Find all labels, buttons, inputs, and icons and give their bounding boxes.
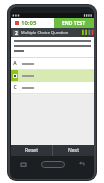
button[interactable]: 10:05 bbox=[11, 18, 54, 28]
staticText: END TEST bbox=[62, 20, 86, 27]
button[interactable]: Back bbox=[69, 157, 94, 171]
staticText: 10:05 bbox=[21, 19, 37, 27]
button[interactable]: Reset bbox=[11, 145, 52, 156]
button[interactable]: C bbox=[11, 82, 94, 93]
staticText: C bbox=[13, 84, 17, 91]
staticText: Next bbox=[68, 147, 79, 154]
button[interactable]: 2 bbox=[11, 28, 94, 37]
button[interactable]: Home bbox=[36, 157, 69, 171]
staticText: Reset bbox=[25, 147, 38, 154]
button[interactable]: A bbox=[11, 58, 94, 69]
staticText: A bbox=[13, 60, 17, 67]
button[interactable]: Next bbox=[53, 145, 94, 156]
staticText: Multiple Choice Question bbox=[21, 30, 81, 35]
other: Question status bbox=[81, 29, 93, 36]
button[interactable]: END TEST bbox=[54, 18, 94, 28]
button[interactable]: Recents bbox=[11, 157, 36, 171]
staticText: 2 bbox=[15, 30, 18, 36]
button[interactable] bbox=[11, 70, 94, 81]
